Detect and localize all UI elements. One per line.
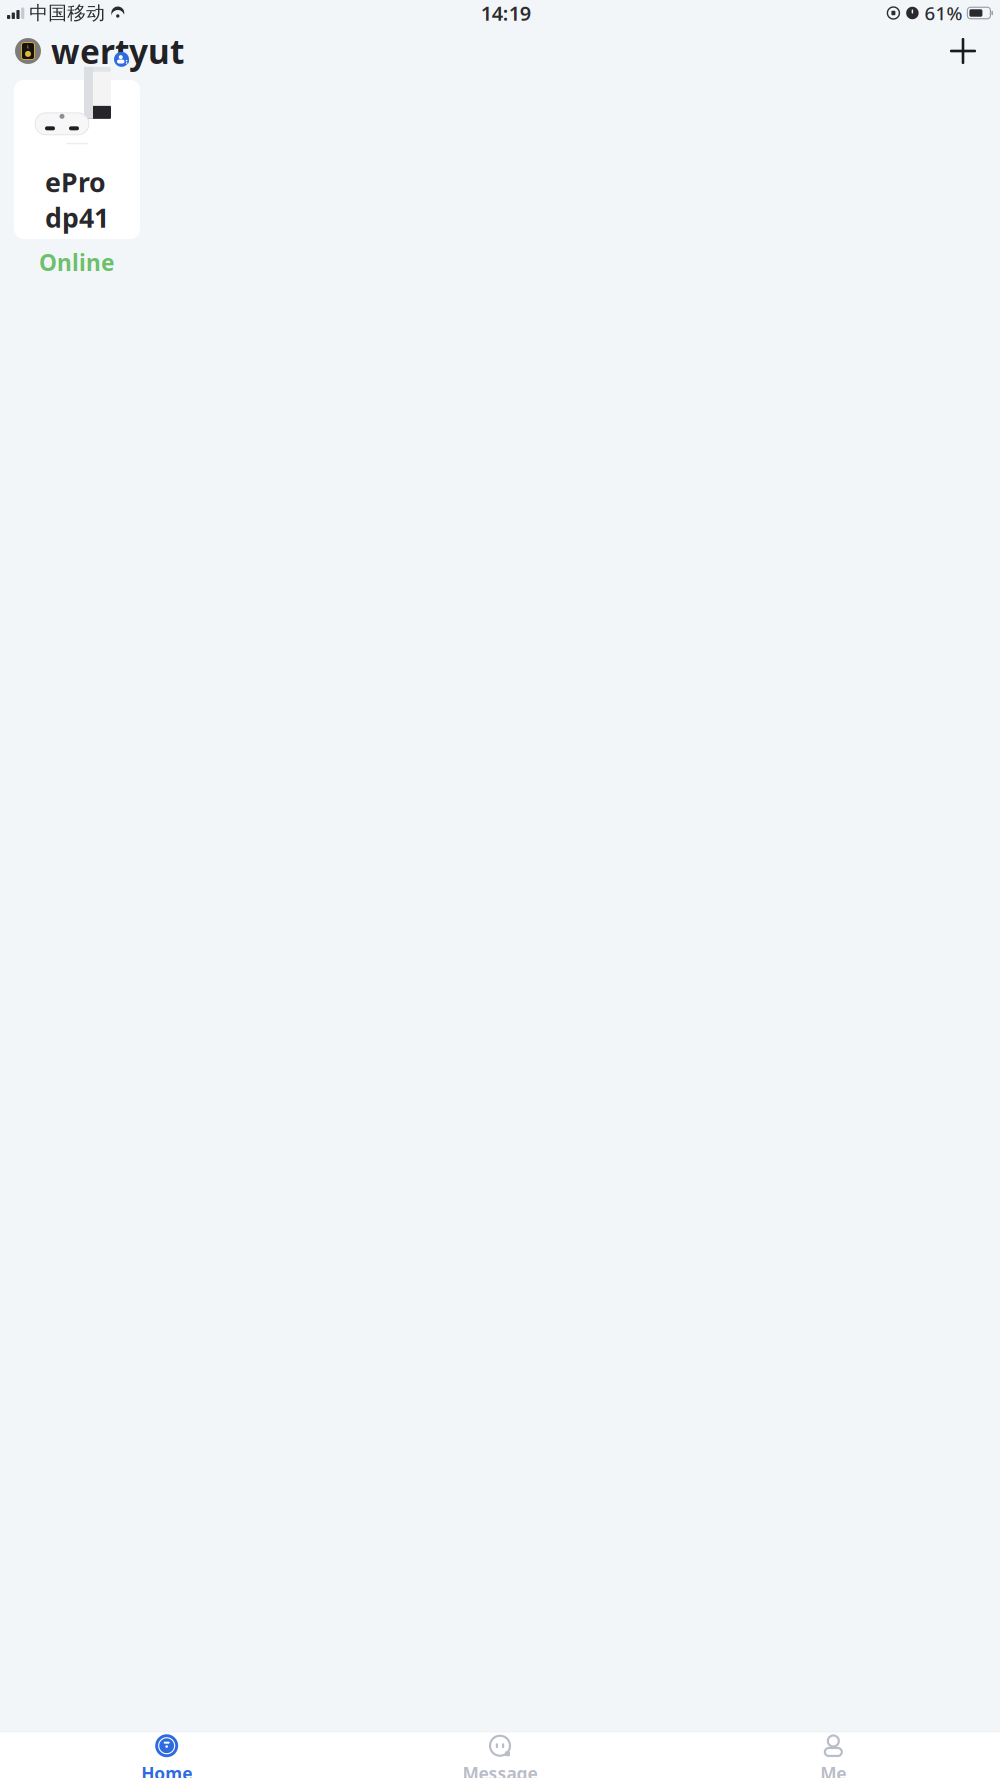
staticText: Home — [141, 1762, 192, 1778]
staticText: 61% — [924, 1, 962, 25]
staticText: wertyut — [51, 29, 184, 73]
staticText: Me — [820, 1762, 846, 1778]
staticText: L — [27, 44, 29, 49]
button[interactable]: Home — [0, 1736, 333, 1778]
staticText: Message — [462, 1762, 537, 1778]
button[interactable]: Me — [667, 1736, 1000, 1778]
button[interactable]: L — [15, 29, 184, 73]
staticText: ePro dp41 — [45, 164, 109, 235]
button[interactable]: Add device — [941, 29, 985, 73]
button[interactable]: Message — [333, 1736, 667, 1778]
staticText: 中国移动 — [29, 1, 105, 24]
staticText: 14:19 — [481, 0, 531, 26]
staticText: Online — [39, 247, 115, 277]
button[interactable]: ePro dp41 — [14, 80, 140, 239]
